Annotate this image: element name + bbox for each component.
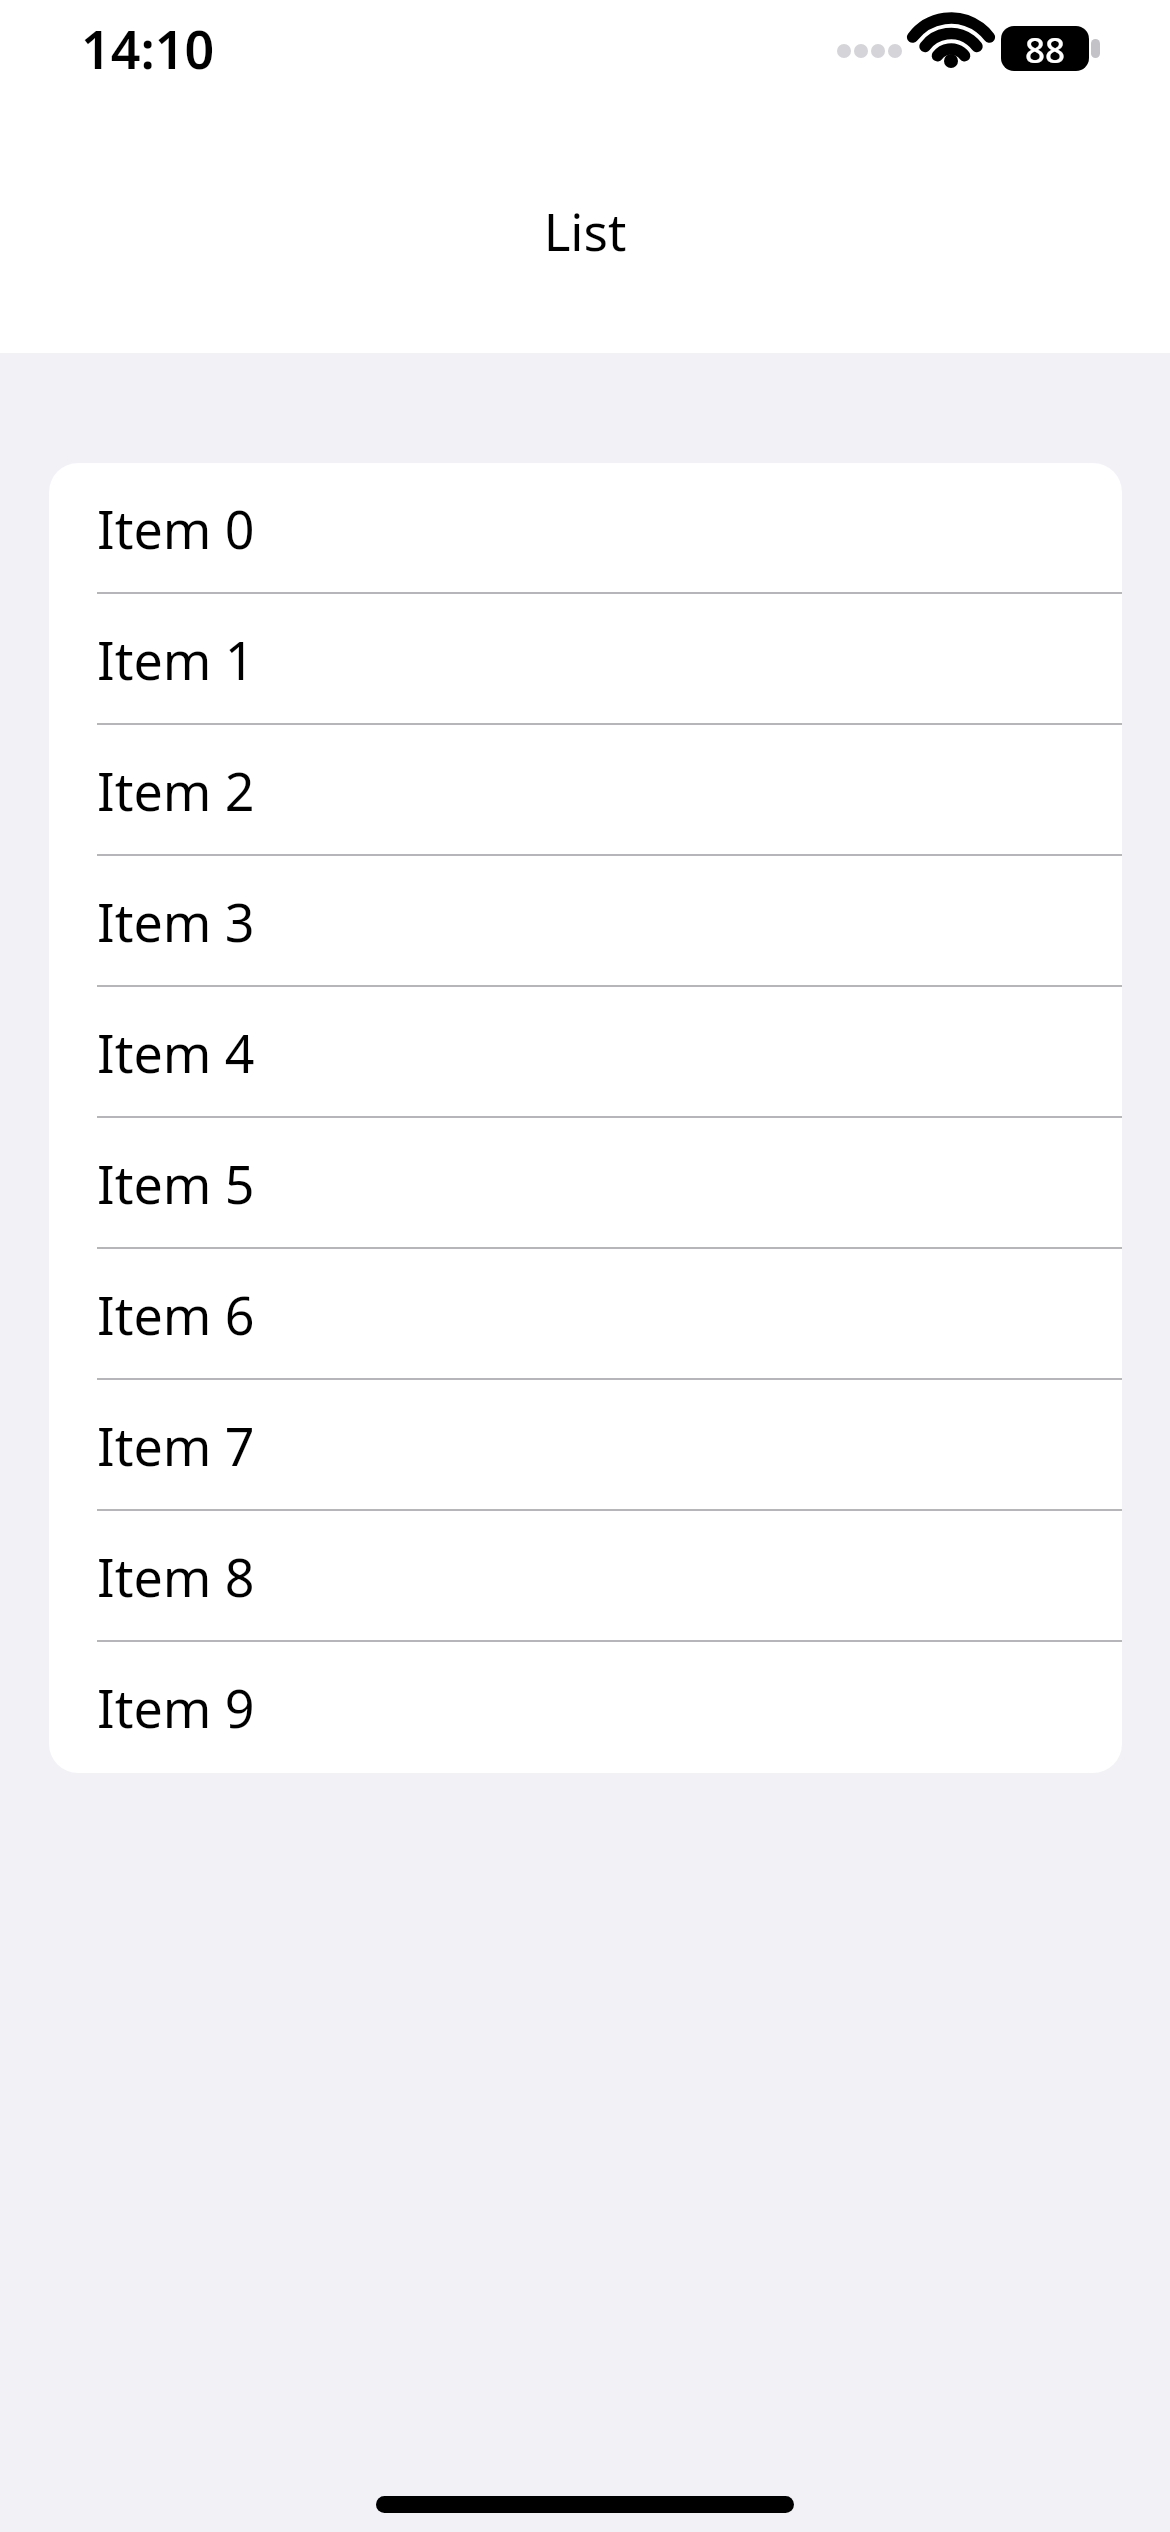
staticText: Item 4 xyxy=(97,1017,255,1088)
button[interactable]: Item 7 xyxy=(49,1380,1122,1511)
button[interactable]: Item 4 xyxy=(49,987,1122,1118)
button[interactable]: Item 3 xyxy=(49,856,1122,987)
other: Cellular signal xyxy=(837,37,899,59)
staticText: Item 6 xyxy=(97,1279,255,1350)
staticText: 14:10 xyxy=(81,13,215,84)
staticText: Item 9 xyxy=(97,1672,255,1743)
button[interactable]: Item 1 xyxy=(49,594,1122,725)
staticText: Item 0 xyxy=(97,493,255,564)
staticText: Item 1 xyxy=(97,624,255,695)
button[interactable]: Item 9 xyxy=(49,1642,1122,1773)
staticText: Item 8 xyxy=(97,1541,255,1612)
button[interactable]: Item 0 xyxy=(49,463,1122,594)
staticText: List xyxy=(0,196,1170,265)
button[interactable]: Item 5 xyxy=(49,1118,1122,1249)
staticText: Item 2 xyxy=(97,755,255,826)
staticText: Item 7 xyxy=(97,1410,255,1481)
staticText: Item 5 xyxy=(97,1148,255,1219)
button[interactable]: Item 6 xyxy=(49,1249,1122,1380)
staticText: Item 3 xyxy=(97,886,255,957)
staticText: 88 xyxy=(1025,26,1066,71)
button[interactable]: Item 2 xyxy=(49,725,1122,856)
other: Battery 88 percent xyxy=(1001,26,1089,71)
other: Wi-Fi xyxy=(919,24,983,72)
button[interactable]: Item 8 xyxy=(49,1511,1122,1642)
